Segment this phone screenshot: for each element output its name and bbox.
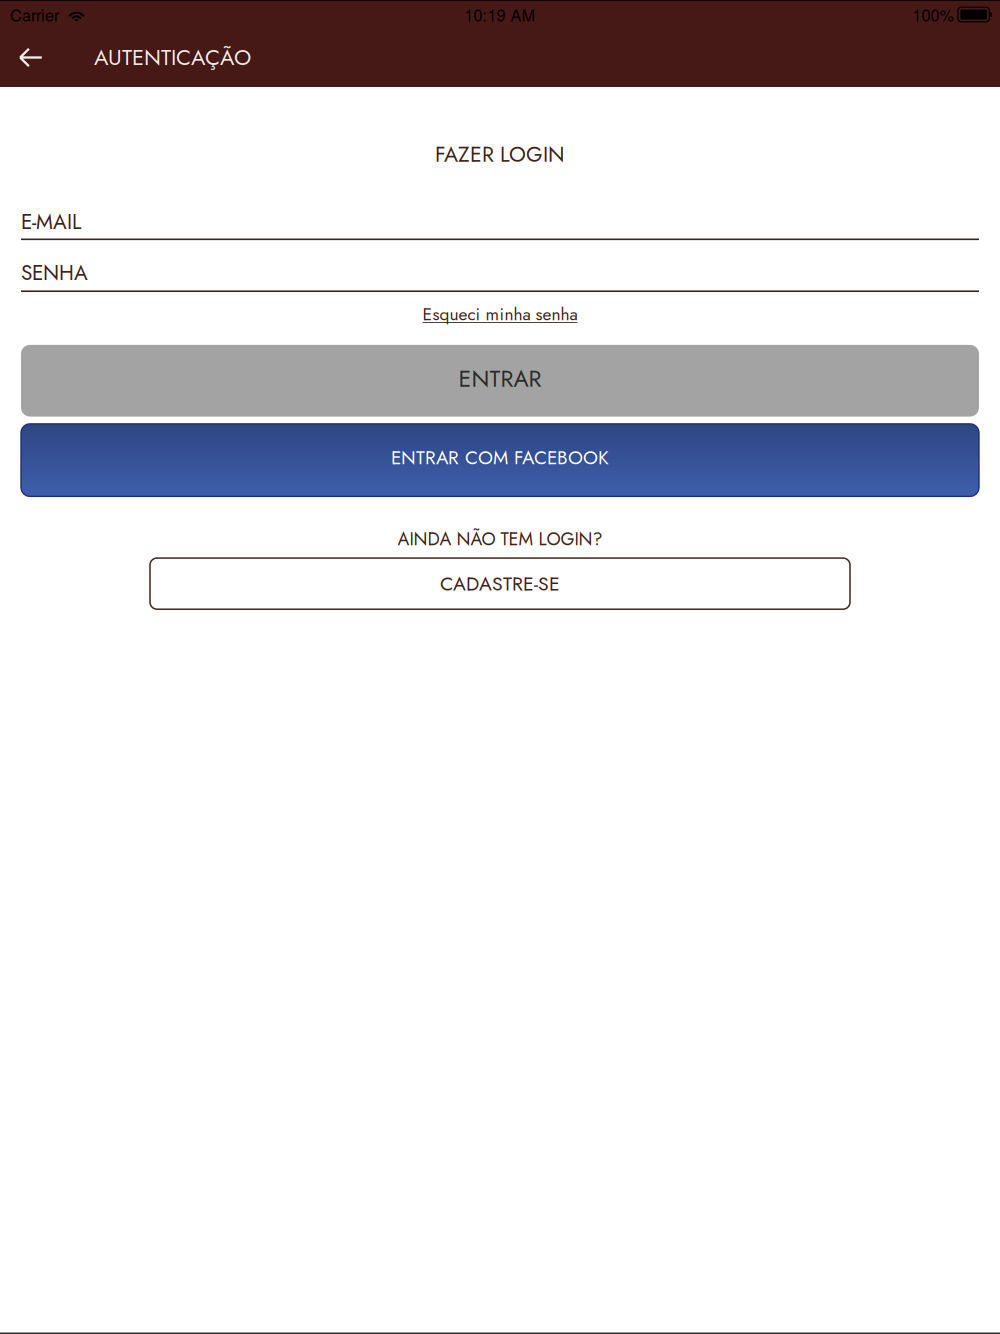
staticText: 10:19 AM [464,3,535,26]
staticText: AINDA NÃO TEM LOGIN? [397,526,602,552]
staticText: CADASTRE-SE [440,570,560,598]
staticText: E-MAIL [21,207,81,237]
button[interactable]: ENTRAR COM FACEBOOK [21,424,979,496]
staticText: Esqueci minha senha [422,302,577,327]
button[interactable]: Esqueci minha senha [21,292,979,345]
button[interactable]: CADASTRE-SE [150,558,850,609]
staticText: 100% [912,3,953,26]
staticText: ENTRAR COM FACEBOOK [391,444,609,471]
button[interactable]: Voltar [0,28,94,87]
staticText: AUTENTICAÇÃO [94,42,251,73]
staticText: FAZER LOGIN [435,139,565,170]
button[interactable]: ENTRAR [21,345,979,417]
staticText: Carrier [10,3,59,26]
staticText: ENTRAR [458,362,541,395]
staticText: SENHA [21,258,88,288]
